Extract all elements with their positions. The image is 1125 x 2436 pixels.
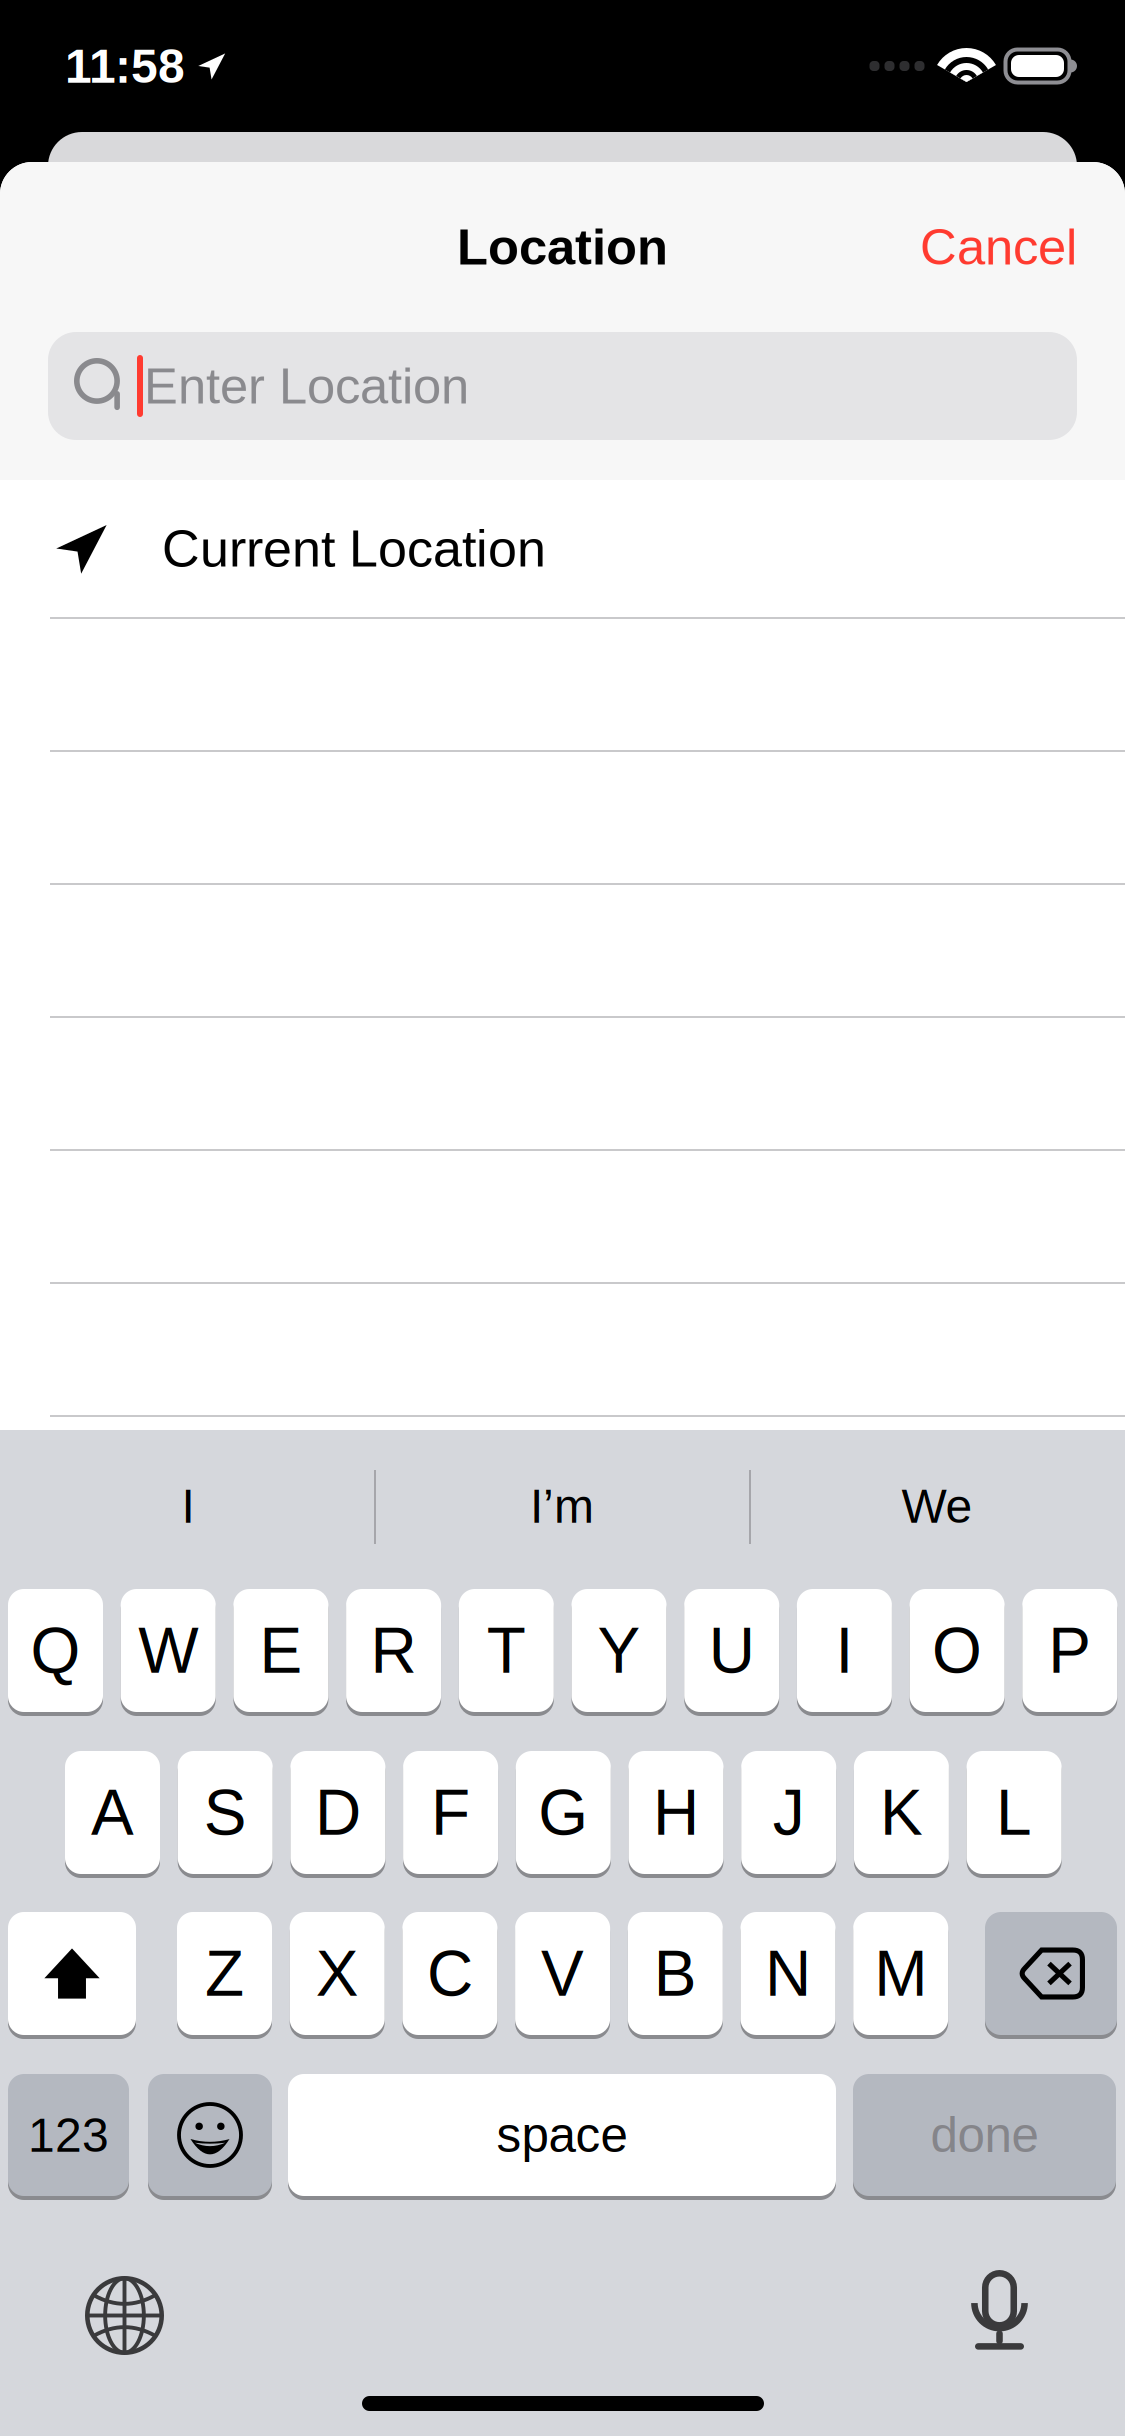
button[interactable]: G [516,1749,611,1876]
button[interactable]: S [178,1749,273,1876]
button[interactable]: T [459,1587,554,1714]
staticText: L [996,1778,1032,1847]
staticText: F [431,1778,470,1847]
staticText: S [204,1778,247,1847]
staticText: 123 [28,2109,109,2161]
staticText: Location [457,219,668,275]
staticText: U [709,1616,755,1685]
button[interactable]: A [65,1749,160,1876]
button[interactable]: O [910,1587,1005,1714]
staticText: O [932,1616,982,1685]
staticText: V [541,1939,584,2008]
button[interactable]: We [751,1430,1123,1582]
button[interactable]: Q [8,1587,103,1714]
button[interactable]: I’m [376,1430,748,1582]
button[interactable]: done [853,2072,1116,2198]
staticText: Cancel [920,219,1077,275]
staticText: space [496,2108,627,2162]
staticText: B [654,1939,697,2008]
staticText: W [138,1616,198,1685]
staticText: 11:58 [65,40,185,92]
button[interactable]: P [1022,1587,1117,1714]
button[interactable]: L [967,1749,1062,1876]
button[interactable]: space [288,2072,836,2198]
staticText: T [487,1616,526,1685]
staticText: R [371,1616,417,1685]
button[interactable] [148,2072,272,2198]
button[interactable]: U [684,1587,779,1714]
button[interactable]: Next keyboard [63,2254,186,2377]
button[interactable]: H [628,1749,723,1876]
button[interactable]: K [854,1749,949,1876]
button[interactable]: C [402,1910,497,2037]
button[interactable]: N [740,1910,835,2037]
button[interactable]: Cancel [904,201,1093,293]
staticText: G [538,1778,588,1847]
button[interactable]: W [121,1587,216,1714]
staticText: K [880,1778,923,1847]
staticText: M [874,1939,927,2008]
staticText: A [91,1778,134,1847]
staticText: I [181,1480,194,1532]
button[interactable]: D [290,1749,385,1876]
staticText: J [773,1778,805,1847]
staticText: Y [597,1616,640,1685]
staticText: done [930,2108,1038,2162]
button[interactable] [8,1910,136,2037]
button[interactable]: F [403,1749,498,1876]
staticText: P [1048,1616,1091,1685]
staticText: D [315,1778,361,1847]
button[interactable]: Current Location [0,480,1125,617]
button[interactable]: B [628,1910,723,2037]
button[interactable]: X [290,1910,385,2037]
staticText: Z [205,1939,244,2008]
staticText: C [427,1939,473,2008]
staticText: We [901,1480,972,1532]
staticText: N [765,1939,811,2008]
button[interactable]: E [233,1587,328,1714]
staticText: I [835,1616,853,1685]
button[interactable]: Y [571,1587,666,1714]
button[interactable]: Dictation [949,2248,1050,2375]
button[interactable]: J [741,1749,836,1876]
staticText: Q [30,1616,80,1685]
button[interactable]: I [2,1430,374,1582]
button[interactable]: R [346,1587,441,1714]
staticText: I’m [530,1480,594,1532]
button[interactable]: M [853,1910,948,2037]
staticText: E [259,1616,302,1685]
staticText: H [653,1778,699,1847]
staticText: Enter Location [144,358,469,414]
button[interactable]: V [515,1910,610,2037]
staticText: Current Location [162,520,546,577]
button[interactable]: I [797,1587,892,1714]
button[interactable]: Z [177,1910,272,2037]
button[interactable] [985,1910,1117,2037]
button[interactable]: 123 [8,2072,129,2198]
staticText: X [316,1939,359,2008]
